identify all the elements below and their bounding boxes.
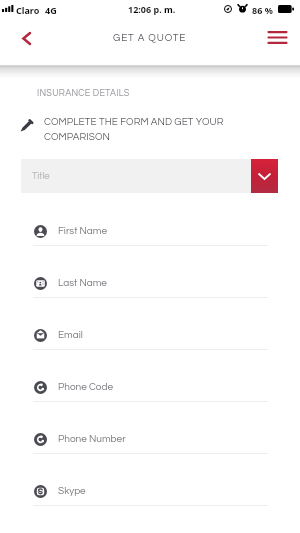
button[interactable]: Phone Number <box>0 425 300 477</box>
button[interactable]: Menu <box>256 20 300 56</box>
button[interactable]: Title <box>21 159 251 193</box>
button[interactable]: Back <box>0 20 52 56</box>
staticText: GET A QUOTE <box>113 33 187 43</box>
button[interactable]: Email <box>0 321 300 373</box>
staticText: Phone Number <box>58 434 126 444</box>
staticText: 12:06 p. m. <box>128 3 176 15</box>
staticText: 4G <box>45 4 57 16</box>
staticText: Last Name <box>58 278 107 288</box>
button[interactable]: Skype <box>0 477 300 529</box>
staticText: Email <box>58 330 83 340</box>
staticText: Title <box>32 171 50 181</box>
button[interactable]: Open title list <box>251 159 278 193</box>
button[interactable]: Last Name <box>0 269 300 321</box>
staticText: INSURANCE DETAILS <box>37 89 130 98</box>
button[interactable]: Phone Code <box>0 373 300 425</box>
staticText: Phone Code <box>58 382 113 392</box>
staticText: 86 % <box>252 4 273 16</box>
staticText: COMPLETE THE FORM AND GET YOUR COMPARISO… <box>44 117 272 142</box>
button[interactable]: First Name <box>0 217 300 269</box>
staticText: Claro <box>16 4 40 16</box>
staticText: First Name <box>58 226 108 236</box>
staticText: Skype <box>58 486 86 496</box>
